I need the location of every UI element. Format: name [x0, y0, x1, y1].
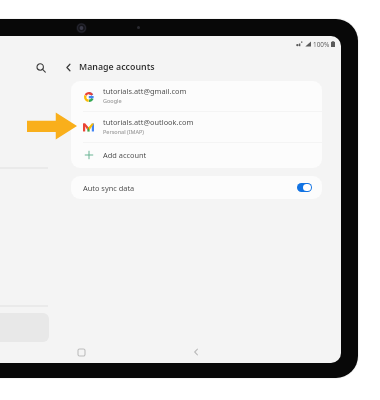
staticText: Auto sync data — [83, 183, 135, 193]
staticText: 100% — [313, 40, 330, 48]
button[interactable]: tutorials.att@gmail.com — [71, 81, 322, 112]
staticText: tutorials.att@outlook.com — [103, 117, 194, 127]
staticText: Manage accounts — [79, 61, 155, 73]
button[interactable]: Back — [189, 345, 203, 359]
staticText: tutorials.att@gmail.com — [103, 86, 187, 96]
button[interactable]: Add account — [71, 143, 322, 166]
staticText: Add account — [103, 150, 147, 160]
button[interactable]: tutorials.att@outlook.com — [71, 112, 322, 143]
button[interactable]: Home — [74, 345, 88, 359]
button[interactable]: Search — [33, 60, 49, 76]
staticText: Google — [103, 97, 122, 104]
button[interactable]: Navigate up — [61, 60, 75, 74]
button[interactable]: Auto sync data — [71, 176, 322, 199]
staticText: Personal (IMAP) — [103, 128, 144, 135]
